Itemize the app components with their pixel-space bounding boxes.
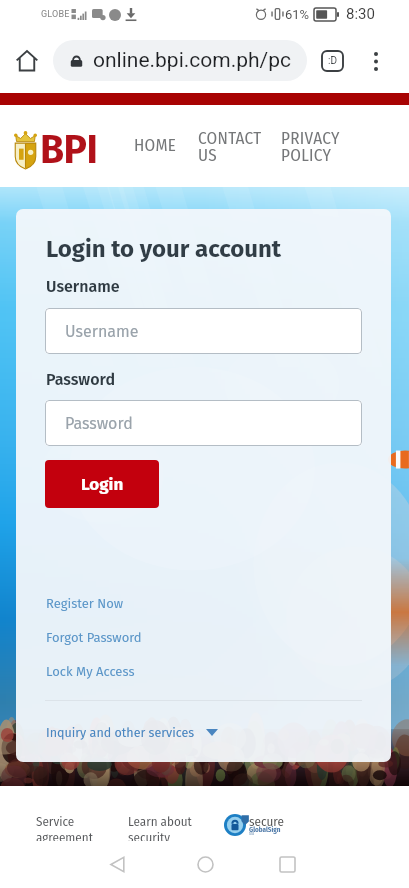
staticText: GlobalSign [249,825,281,833]
staticText: CONTACT [198,128,262,148]
staticText: GLOBE [41,9,70,20]
staticText: Learn about [128,814,192,830]
staticText: Password [46,370,115,389]
staticText: Lock My Access [46,664,135,680]
button[interactable]: Recent apps [257,844,317,884]
button[interactable]: Password [45,400,362,446]
staticText: :D [328,55,337,67]
staticText: Username [46,277,120,296]
button[interactable]: Username [45,308,362,354]
staticText: secure [249,814,284,830]
staticText: POLICY [281,145,332,165]
staticText: US [198,145,217,165]
staticText: Inquiry and other services [46,725,195,740]
button[interactable]: Lock My Access [46,664,135,680]
staticText: ssl [249,831,254,836]
button[interactable]: Home [175,844,235,884]
button[interactable]: Register Now [46,596,124,612]
staticText: security [128,830,171,841]
staticText: 8:30 [346,5,375,23]
button[interactable]: CONTACT [198,128,278,168]
button[interactable]: Switch tabs [316,45,348,77]
staticText: Login to your account [46,235,282,264]
staticText: Login [81,474,124,494]
button[interactable]: Back [87,844,147,884]
staticText: Register Now [46,596,124,612]
button[interactable]: Forgot Password [46,630,142,646]
button[interactable]: Learn about [128,814,208,841]
staticText: Username [65,322,139,341]
staticText: Forgot Password [46,630,142,646]
button[interactable]: PRIVACY [281,128,361,168]
staticText: agreement [36,830,93,841]
staticText: BPI [40,127,98,174]
button[interactable]: Login [45,460,159,508]
button[interactable]: secure [224,814,282,836]
staticText: HOME [134,135,177,155]
button[interactable]: More options [360,45,392,77]
button[interactable]: BPI [12,127,98,174]
staticText: Service [36,814,75,830]
staticText: PRIVACY [281,128,340,148]
button[interactable]: online.bpi.com.ph/pc [53,40,307,81]
button[interactable]: Home page [6,40,48,82]
button[interactable]: Inquiry and other services [46,725,218,740]
staticText: Password [65,414,133,433]
staticText: 61% [285,7,310,22]
staticText: online.bpi.com.ph/pc [93,48,292,73]
button[interactable]: HOME [134,135,214,175]
button[interactable]: Service [36,814,116,841]
